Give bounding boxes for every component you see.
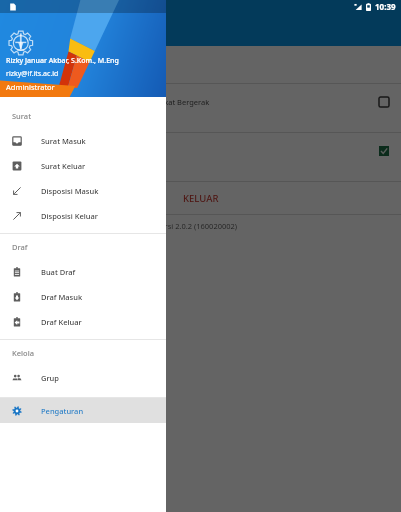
staticText: Rizky Januar Akbar, S.Kom., M.Eng xyxy=(6,56,119,66)
button[interactable]: Notifikasi Surel xyxy=(0,133,401,181)
staticText: Kelola xyxy=(12,348,34,358)
staticText: Buat Draf xyxy=(41,267,76,277)
staticText: 10:39 xyxy=(375,1,396,12)
staticText: Surat xyxy=(12,111,32,121)
staticText: Versi 2.0.2 (160020002) xyxy=(156,221,238,231)
staticText: KELUAR xyxy=(183,192,219,205)
staticText: Notifikasi Perangkat Bergerak xyxy=(104,97,210,107)
button[interactable]: Disposisi Keluar xyxy=(0,203,166,228)
button[interactable]: Grup xyxy=(0,365,166,390)
staticText: Surat Masuk xyxy=(41,136,86,146)
button[interactable]: Pengaturan xyxy=(0,398,166,423)
staticText: Draf xyxy=(12,242,28,252)
button[interactable]: Draf Keluar xyxy=(0,309,166,334)
button[interactable]: Draf Masuk xyxy=(0,284,166,309)
button[interactable]: Surat Masuk xyxy=(0,128,166,153)
button[interactable]: Surat Keluar xyxy=(0,153,166,178)
staticText: Disposisi Masuk xyxy=(41,186,99,196)
button[interactable]: KELUAR xyxy=(0,182,401,214)
staticText: Draf Masuk xyxy=(41,292,83,302)
staticText: Surat Keluar xyxy=(41,161,86,171)
staticText: Administrator xyxy=(6,82,55,92)
button[interactable]: Buat Draf xyxy=(0,259,166,284)
button[interactable]: Notifikasi Perangkat Bergerak xyxy=(0,84,401,132)
staticText: Draf Keluar xyxy=(41,317,82,327)
staticText: rizky@if.its.ac.id xyxy=(6,69,59,79)
staticText: Pengaturan xyxy=(41,406,84,416)
button[interactable]: Disposisi Masuk xyxy=(0,178,166,203)
staticText: Grup xyxy=(41,373,59,383)
staticText: Disposisi Keluar xyxy=(41,211,98,221)
